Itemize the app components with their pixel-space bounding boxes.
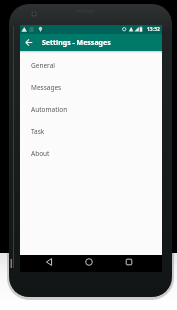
button[interactable] xyxy=(20,34,37,51)
staticText: 13:52 xyxy=(147,26,160,33)
staticText: Settings - Messages xyxy=(42,38,111,48)
button[interactable]: Automation xyxy=(20,98,162,120)
button[interactable] xyxy=(82,255,96,272)
button[interactable] xyxy=(122,255,136,272)
button[interactable]: Messages xyxy=(20,76,162,98)
staticText: Messages xyxy=(31,83,62,92)
staticText: About xyxy=(31,149,50,158)
button[interactable]: General xyxy=(20,54,162,76)
button[interactable]: About xyxy=(20,142,162,164)
button[interactable] xyxy=(42,255,56,272)
button[interactable]: Task xyxy=(20,120,162,142)
staticText: General xyxy=(31,61,55,70)
staticText: Automation xyxy=(31,105,68,114)
staticText: Task xyxy=(31,127,45,136)
